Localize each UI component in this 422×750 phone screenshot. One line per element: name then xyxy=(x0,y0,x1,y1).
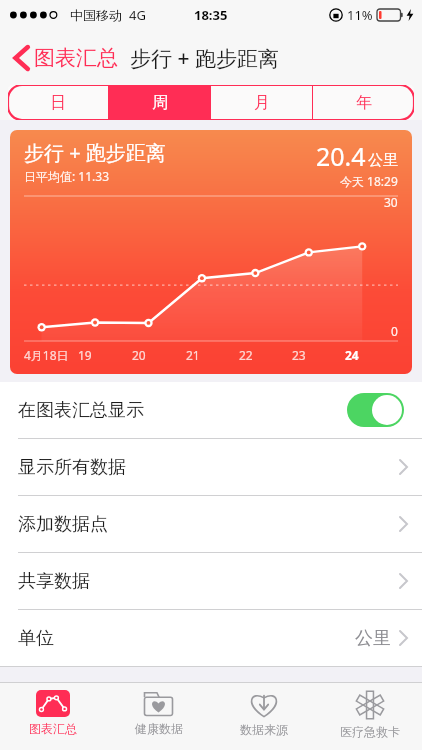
staticText: 4月18日 xyxy=(24,347,69,363)
staticText: 显示所有数据 xyxy=(18,456,399,479)
staticText: 21 xyxy=(186,347,200,363)
button[interactable]: 在图表汇总显示 xyxy=(0,382,422,438)
staticText: 24 xyxy=(345,347,359,363)
staticText: 步行 + 跑步距离 xyxy=(24,139,166,166)
button[interactable]: 添加数据点 xyxy=(0,496,422,552)
staticText: 图表汇总 xyxy=(29,721,77,736)
button[interactable]: 共享数据 xyxy=(0,553,422,609)
staticText: 今天 18:29 xyxy=(340,173,398,189)
button[interactable]: 步行 + 跑步距离 xyxy=(10,130,412,374)
button[interactable]: 健康数据 xyxy=(106,683,211,750)
button[interactable]: 图表汇总 xyxy=(10,41,122,75)
button[interactable]: 月 xyxy=(211,85,312,120)
staticText: 0 xyxy=(391,323,398,339)
button[interactable]: 显示所有数据 xyxy=(0,439,422,495)
button[interactable] xyxy=(347,393,404,427)
staticText: 日 xyxy=(50,93,66,113)
staticText: 在图表汇总显示 xyxy=(18,399,347,422)
staticText: 30 xyxy=(384,194,398,210)
staticText: 健康数据 xyxy=(135,721,183,736)
staticText: 数据来源 xyxy=(240,722,288,737)
button[interactable]: 日 xyxy=(8,85,108,120)
staticText: 图表汇总 xyxy=(34,45,118,71)
staticText: 4G xyxy=(129,6,146,24)
button[interactable]: 数据来源 xyxy=(211,683,316,750)
button[interactable]: 周 xyxy=(109,85,210,120)
staticText: 11% xyxy=(347,6,373,24)
staticText: 20 xyxy=(132,347,146,363)
staticText: 单位 xyxy=(18,627,355,650)
staticText: 步行 + 跑步距离 xyxy=(130,44,279,73)
button[interactable]: 医疗急救卡 xyxy=(317,683,422,750)
staticText: 19 xyxy=(78,347,92,363)
staticText: 共享数据 xyxy=(18,570,399,593)
staticText: 23 xyxy=(292,347,306,363)
staticText: 周 xyxy=(152,93,168,113)
staticText: 公里 xyxy=(355,627,391,650)
staticText: 中国移动 xyxy=(70,7,122,23)
staticText: 日平均值: 11.33 xyxy=(24,168,110,184)
staticText: 医疗急救卡 xyxy=(340,724,400,739)
button[interactable]: 年 xyxy=(313,85,414,120)
staticText: 年 xyxy=(356,93,372,113)
staticText: 添加数据点 xyxy=(18,513,399,536)
staticText: 20.4 xyxy=(316,139,366,173)
button[interactable]: 图表汇总 xyxy=(0,683,105,750)
button[interactable]: 单位 xyxy=(0,610,422,666)
staticText: 18:35 xyxy=(194,6,228,24)
staticText: 月 xyxy=(254,93,270,113)
staticText: 22 xyxy=(239,347,253,363)
staticText: 公里 xyxy=(368,151,398,170)
